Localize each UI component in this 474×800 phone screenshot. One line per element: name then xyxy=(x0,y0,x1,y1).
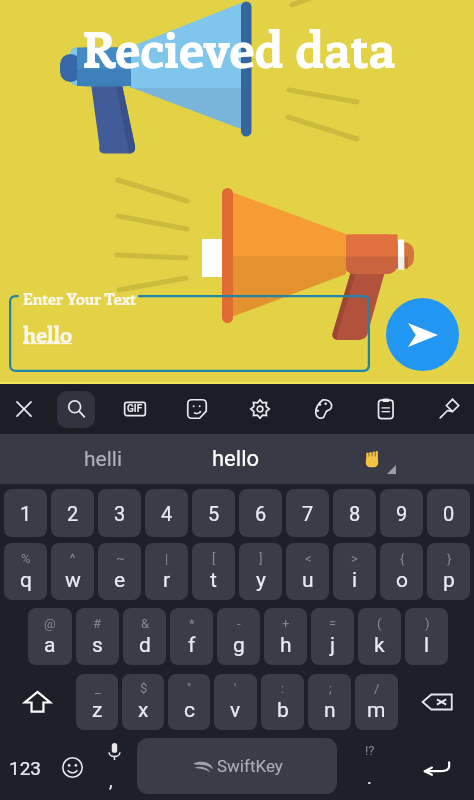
button[interactable]: 8 xyxy=(333,489,376,537)
staticText: ~ xyxy=(116,551,125,566)
button[interactable]: Pin xyxy=(422,384,474,434)
staticText: k xyxy=(374,633,385,658)
staticText: 8 xyxy=(349,502,361,525)
staticText: q xyxy=(20,568,32,593)
button[interactable]: - xyxy=(217,608,260,665)
staticText: & xyxy=(141,616,150,631)
button[interactable]: & xyxy=(123,608,166,665)
staticText: . xyxy=(367,767,372,788)
button[interactable]: ' xyxy=(214,674,257,730)
button[interactable]: # xyxy=(76,608,119,665)
button[interactable]: 3 xyxy=(98,489,141,537)
button[interactable]: ) xyxy=(405,608,448,665)
button[interactable]: | xyxy=(145,543,188,600)
button[interactable]: 1 xyxy=(4,489,47,537)
button[interactable]: Backspace xyxy=(400,674,474,730)
staticText: 9 xyxy=(396,502,408,525)
staticText: [ xyxy=(212,551,216,566)
button[interactable]: ^ xyxy=(51,543,94,600)
staticText: o xyxy=(396,568,408,593)
staticText: : xyxy=(281,681,285,696)
button[interactable]: 6 xyxy=(239,489,282,537)
button[interactable]: @ xyxy=(28,608,72,665)
staticText: helli xyxy=(84,447,123,472)
button[interactable]: " xyxy=(168,674,210,730)
button[interactable]: Send xyxy=(386,298,459,371)
button[interactable]: < xyxy=(286,543,329,600)
button[interactable]: Waving hand emoji xyxy=(307,434,437,484)
button[interactable]: GIF xyxy=(108,384,162,434)
staticText: i xyxy=(352,568,358,593)
button[interactable]: 0 xyxy=(427,489,470,537)
staticText: @ xyxy=(44,616,56,631)
staticText: 7 xyxy=(302,502,314,525)
staticText: Enter Your Text xyxy=(23,288,136,309)
button[interactable]: ( xyxy=(358,608,401,665)
staticText: 0 xyxy=(443,502,455,525)
staticText: | xyxy=(165,551,169,566)
button[interactable]: ] xyxy=(239,543,282,600)
button[interactable]: Enter xyxy=(405,735,469,800)
staticText: 1 xyxy=(20,502,32,525)
button[interactable]: Sticker xyxy=(170,384,224,434)
button[interactable]: Clipboard xyxy=(359,384,413,434)
staticText: z xyxy=(92,698,103,723)
staticText: hello xyxy=(23,319,73,348)
button[interactable]: { xyxy=(380,543,423,600)
button[interactable]: $ xyxy=(122,674,164,730)
staticText: t xyxy=(210,568,217,593)
button[interactable]: 9 xyxy=(380,489,423,537)
staticText: # xyxy=(93,616,102,631)
staticText: * xyxy=(189,616,195,631)
button[interactable]: } xyxy=(427,543,470,600)
button[interactable]: _ xyxy=(76,674,118,730)
staticText: ( xyxy=(377,616,382,631)
staticText: ; xyxy=(329,681,332,696)
button[interactable]: ~ xyxy=(98,543,141,600)
staticText: b xyxy=(277,698,289,723)
button[interactable]: % xyxy=(4,543,47,600)
staticText: ^ xyxy=(70,551,76,566)
staticText: y xyxy=(256,568,266,593)
staticText: m xyxy=(367,698,386,723)
staticText: s xyxy=(92,633,103,658)
staticText: GIF xyxy=(127,403,143,415)
button[interactable]: + xyxy=(264,608,307,665)
button[interactable]: hello xyxy=(171,434,301,484)
button[interactable]: helli xyxy=(38,434,168,484)
staticText: 123 xyxy=(9,757,42,779)
button[interactable]: = xyxy=(311,608,354,665)
button[interactable]: 123 xyxy=(0,735,50,800)
button[interactable]: Settings xyxy=(233,384,287,434)
button[interactable]: [ xyxy=(192,543,235,600)
button[interactable]: Emoji xyxy=(48,735,96,800)
button[interactable]: Shift xyxy=(0,674,74,730)
staticText: " xyxy=(187,681,192,696)
button[interactable]: / xyxy=(355,674,398,730)
staticText: r xyxy=(163,568,171,593)
button[interactable]: > xyxy=(333,543,376,600)
button[interactable]: Voice input and comma xyxy=(96,735,134,800)
staticText: 5 xyxy=(208,502,220,525)
staticText: ' xyxy=(234,681,237,696)
staticText: > xyxy=(351,551,358,566)
staticText: SwiftKey xyxy=(217,756,283,776)
button[interactable]: 4 xyxy=(145,489,188,537)
button[interactable]: Themes xyxy=(296,384,350,434)
button[interactable]: Close xyxy=(0,384,51,434)
button[interactable]: 7 xyxy=(286,489,329,537)
button[interactable]: * xyxy=(170,608,213,665)
staticText: Recieved data xyxy=(82,13,396,81)
button[interactable]: Period xyxy=(345,735,397,800)
button[interactable]: 2 xyxy=(51,489,94,537)
button[interactable]: 5 xyxy=(192,489,235,537)
staticText: { xyxy=(400,551,405,566)
button[interactable]: Search xyxy=(49,384,103,434)
button[interactable]: SwiftKey xyxy=(137,738,337,794)
staticText: ] xyxy=(259,551,263,566)
staticText: _ xyxy=(95,681,101,696)
staticText: p xyxy=(443,568,455,593)
button[interactable]: ; xyxy=(308,674,351,730)
staticText: ) xyxy=(425,616,430,631)
button[interactable]: : xyxy=(261,674,304,730)
